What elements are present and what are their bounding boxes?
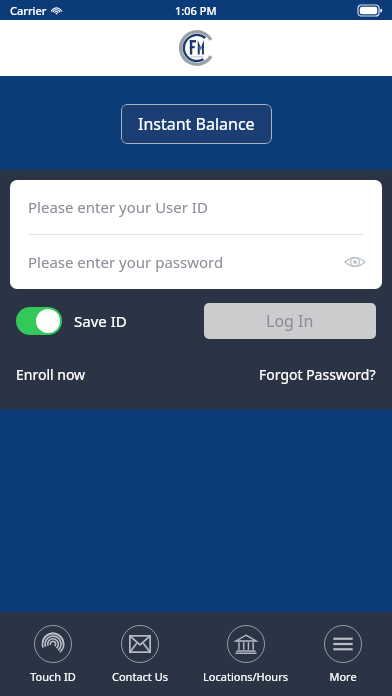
staticText: Carrier [10,3,47,18]
button[interactable]: More [318,621,368,688]
button[interactable]: Touch ID [24,621,82,688]
button[interactable]: Log In [204,303,376,339]
staticText: Instant Balance [138,113,255,135]
staticText: Touch ID [30,669,76,684]
staticText: Locations/Hours [203,669,288,684]
staticText: More [329,669,357,684]
button[interactable]: Save ID [16,307,127,335]
staticText: Please enter your User ID [28,197,208,217]
button[interactable]: Please enter your User ID [10,180,382,234]
button[interactable]: Contact Us [106,621,174,688]
staticText: Enroll now [16,365,86,384]
button[interactable]: Instant Balance [121,104,272,144]
button[interactable]: Forgot Password? [259,365,376,384]
staticText: Please enter your password [28,252,224,272]
staticText: Contact Us [112,669,168,684]
button[interactable]: Enroll now [16,365,86,384]
staticText: 1:06 PM [175,3,217,18]
button[interactable]: Show password [342,249,368,275]
staticText: Save ID [74,311,127,331]
staticText: Forgot Password? [259,365,376,384]
button[interactable]: Please enter your password [10,235,382,289]
staticText: Log In [266,310,314,332]
button[interactable]: Locations/Hours [197,621,294,688]
